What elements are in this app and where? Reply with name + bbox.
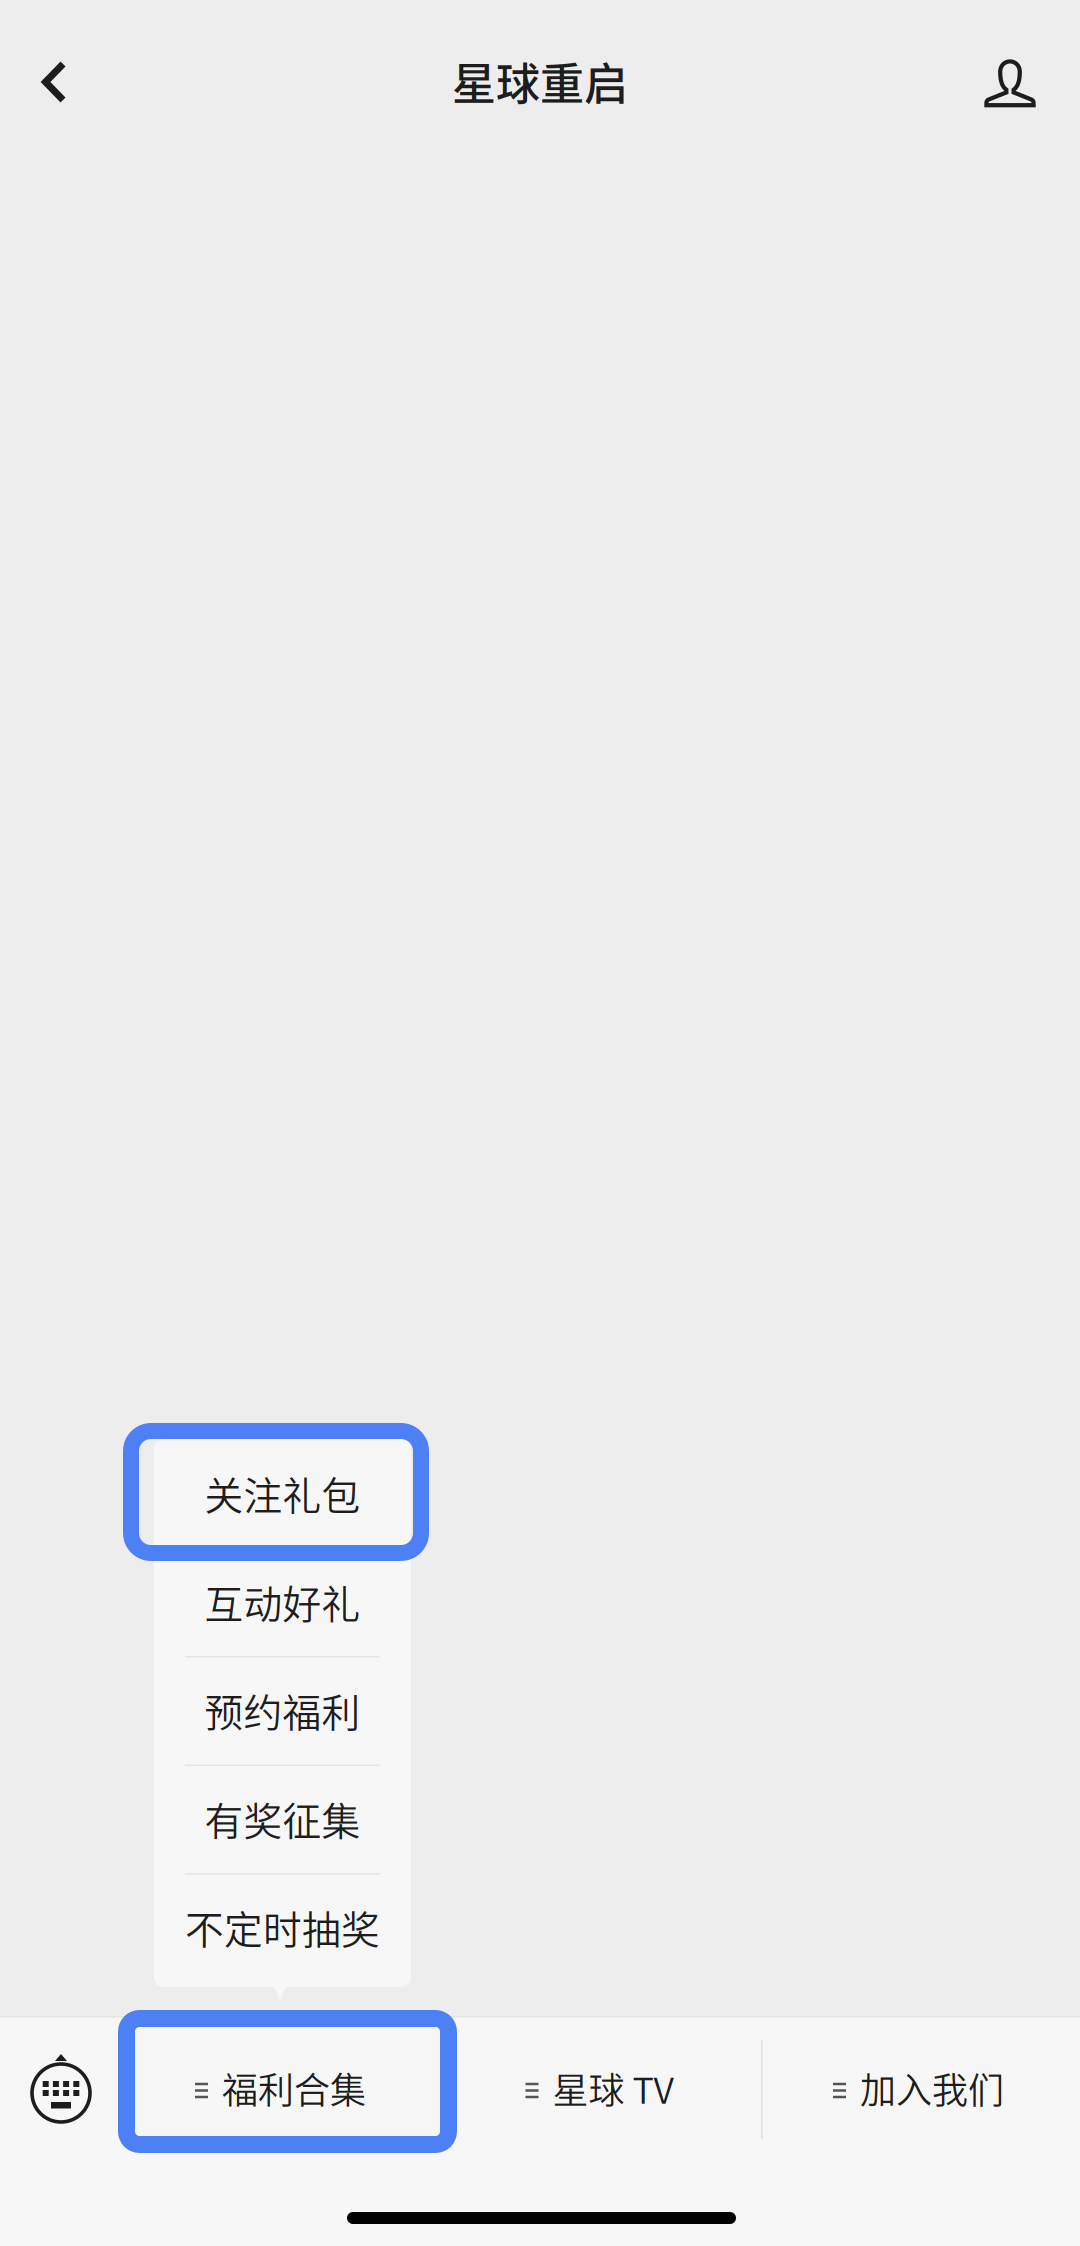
- button[interactable]: 预约福利: [154, 1656, 411, 1764]
- staticText: 星球重启: [452, 49, 628, 113]
- staticText: 预约福利: [204, 1682, 360, 1738]
- button[interactable]: Back: [4, 32, 104, 132]
- staticText: 不定时抽奖: [185, 1899, 380, 1955]
- staticText: 关注礼包: [204, 1465, 360, 1521]
- staticText: 星球 TV: [552, 2062, 673, 2114]
- button[interactable]: 关注礼包: [154, 1439, 411, 1547]
- button[interactable]: 福利合集: [121, 2019, 440, 2157]
- staticText: 福利合集: [222, 2062, 366, 2114]
- staticText: 互动好礼: [204, 1574, 360, 1630]
- button[interactable]: 加入我们: [759, 2019, 1078, 2157]
- staticText: 有奖征集: [204, 1791, 360, 1847]
- button[interactable]: 有奖征集: [154, 1764, 411, 1873]
- button[interactable]: Keyboard: [32, 2054, 90, 2122]
- button[interactable]: Profile: [960, 33, 1060, 133]
- staticText: 加入我们: [860, 2062, 1004, 2114]
- button[interactable]: 不定时抽奖: [154, 1873, 411, 1981]
- button[interactable]: 互动好礼: [154, 1547, 411, 1656]
- button[interactable]: 星球 TV: [440, 2019, 759, 2157]
